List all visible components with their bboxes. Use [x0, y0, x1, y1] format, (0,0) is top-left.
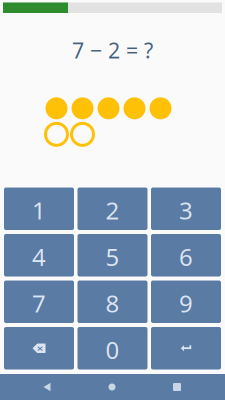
button[interactable]: 1	[4, 187, 74, 230]
staticText: 3	[179, 194, 193, 226]
button[interactable]: Back	[14, 374, 79, 400]
staticText: 2	[105, 194, 119, 226]
staticText: 4	[32, 241, 46, 273]
staticText: 6	[179, 241, 193, 273]
button[interactable]: 6	[151, 234, 221, 276]
button[interactable]: Enter	[151, 327, 221, 369]
staticText: 9	[179, 287, 193, 319]
button[interactable]: 9	[151, 280, 221, 323]
button[interactable]: 4	[4, 234, 74, 276]
staticText: 8	[105, 287, 119, 319]
button[interactable]: 2	[77, 187, 147, 230]
staticText: 7	[32, 287, 46, 319]
button[interactable]: 5	[77, 234, 147, 276]
button[interactable]: 8	[77, 280, 147, 323]
staticText: 1	[32, 194, 46, 226]
staticText: 5	[105, 241, 119, 273]
button[interactable]: 3	[151, 187, 221, 230]
button[interactable]: Home	[79, 374, 144, 400]
staticText: 0	[105, 334, 119, 366]
button[interactable]: Recent apps	[144, 374, 209, 400]
staticText: 7 − 2 = ?	[72, 36, 153, 64]
button[interactable]: 0	[77, 327, 147, 369]
button[interactable]: Delete	[4, 327, 74, 369]
button[interactable]: 7	[4, 280, 74, 323]
